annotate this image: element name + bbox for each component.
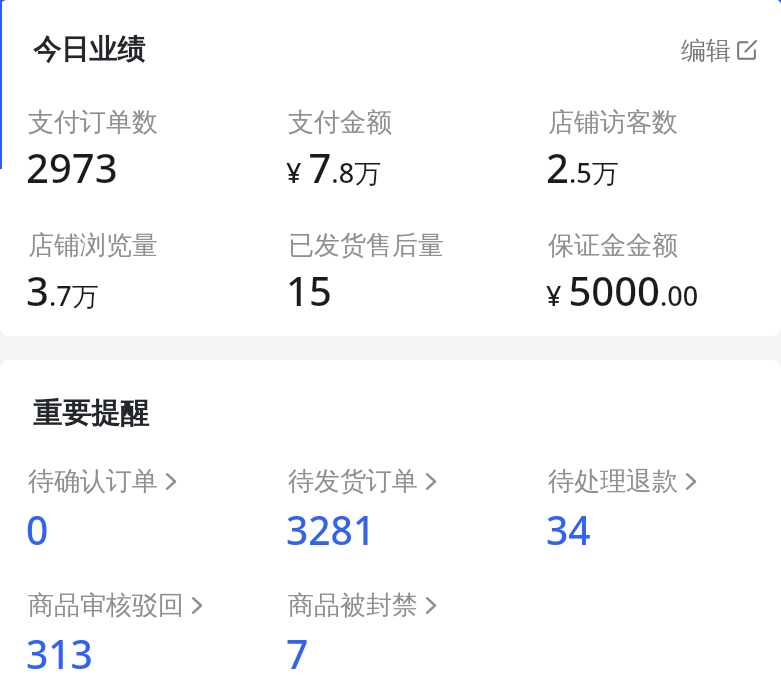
button[interactable]: 待处理退款 [548,465,781,561]
button[interactable]: 商品审核驳回 [28,589,264,685]
staticText: 店铺访客数 [548,106,678,139]
button[interactable]: 待发货订单 [288,465,524,561]
staticText: 待发货订单 [288,465,418,498]
staticText: 已发货售后量 [288,229,444,262]
staticText: 313 [26,627,93,680]
staticText: 7 [286,627,309,680]
staticText: ¥ 7.8万 [286,140,382,194]
button[interactable]: 编辑 [671,25,766,76]
staticText: 重要提醒 [33,395,149,432]
staticText: 店铺浏览量 [28,229,158,262]
button[interactable]: 待确认订单 [28,465,264,561]
staticText: 保证金金额 [548,229,678,262]
staticText: 2.5万 [546,140,619,194]
staticText: 34 [546,503,591,556]
staticText: 支付订单数 [28,106,158,139]
button[interactable]: 商品被封禁 [288,589,524,685]
staticText: 支付金额 [288,106,392,139]
staticText: 待处理退款 [548,465,678,498]
staticText: 15 [286,263,332,317]
staticText: ¥ 5000.00 [546,263,699,317]
staticText: 3.7万 [26,263,99,317]
staticText: 0 [26,503,49,556]
staticText: 2973 [26,140,118,194]
staticText: 待确认订单 [28,465,158,498]
staticText: 3281 [286,503,376,556]
staticText: 商品被封禁 [288,589,418,622]
staticText: 今日业绩 [33,32,145,67]
staticText: 商品审核驳回 [28,589,184,622]
staticText: 编辑 [681,35,731,66]
